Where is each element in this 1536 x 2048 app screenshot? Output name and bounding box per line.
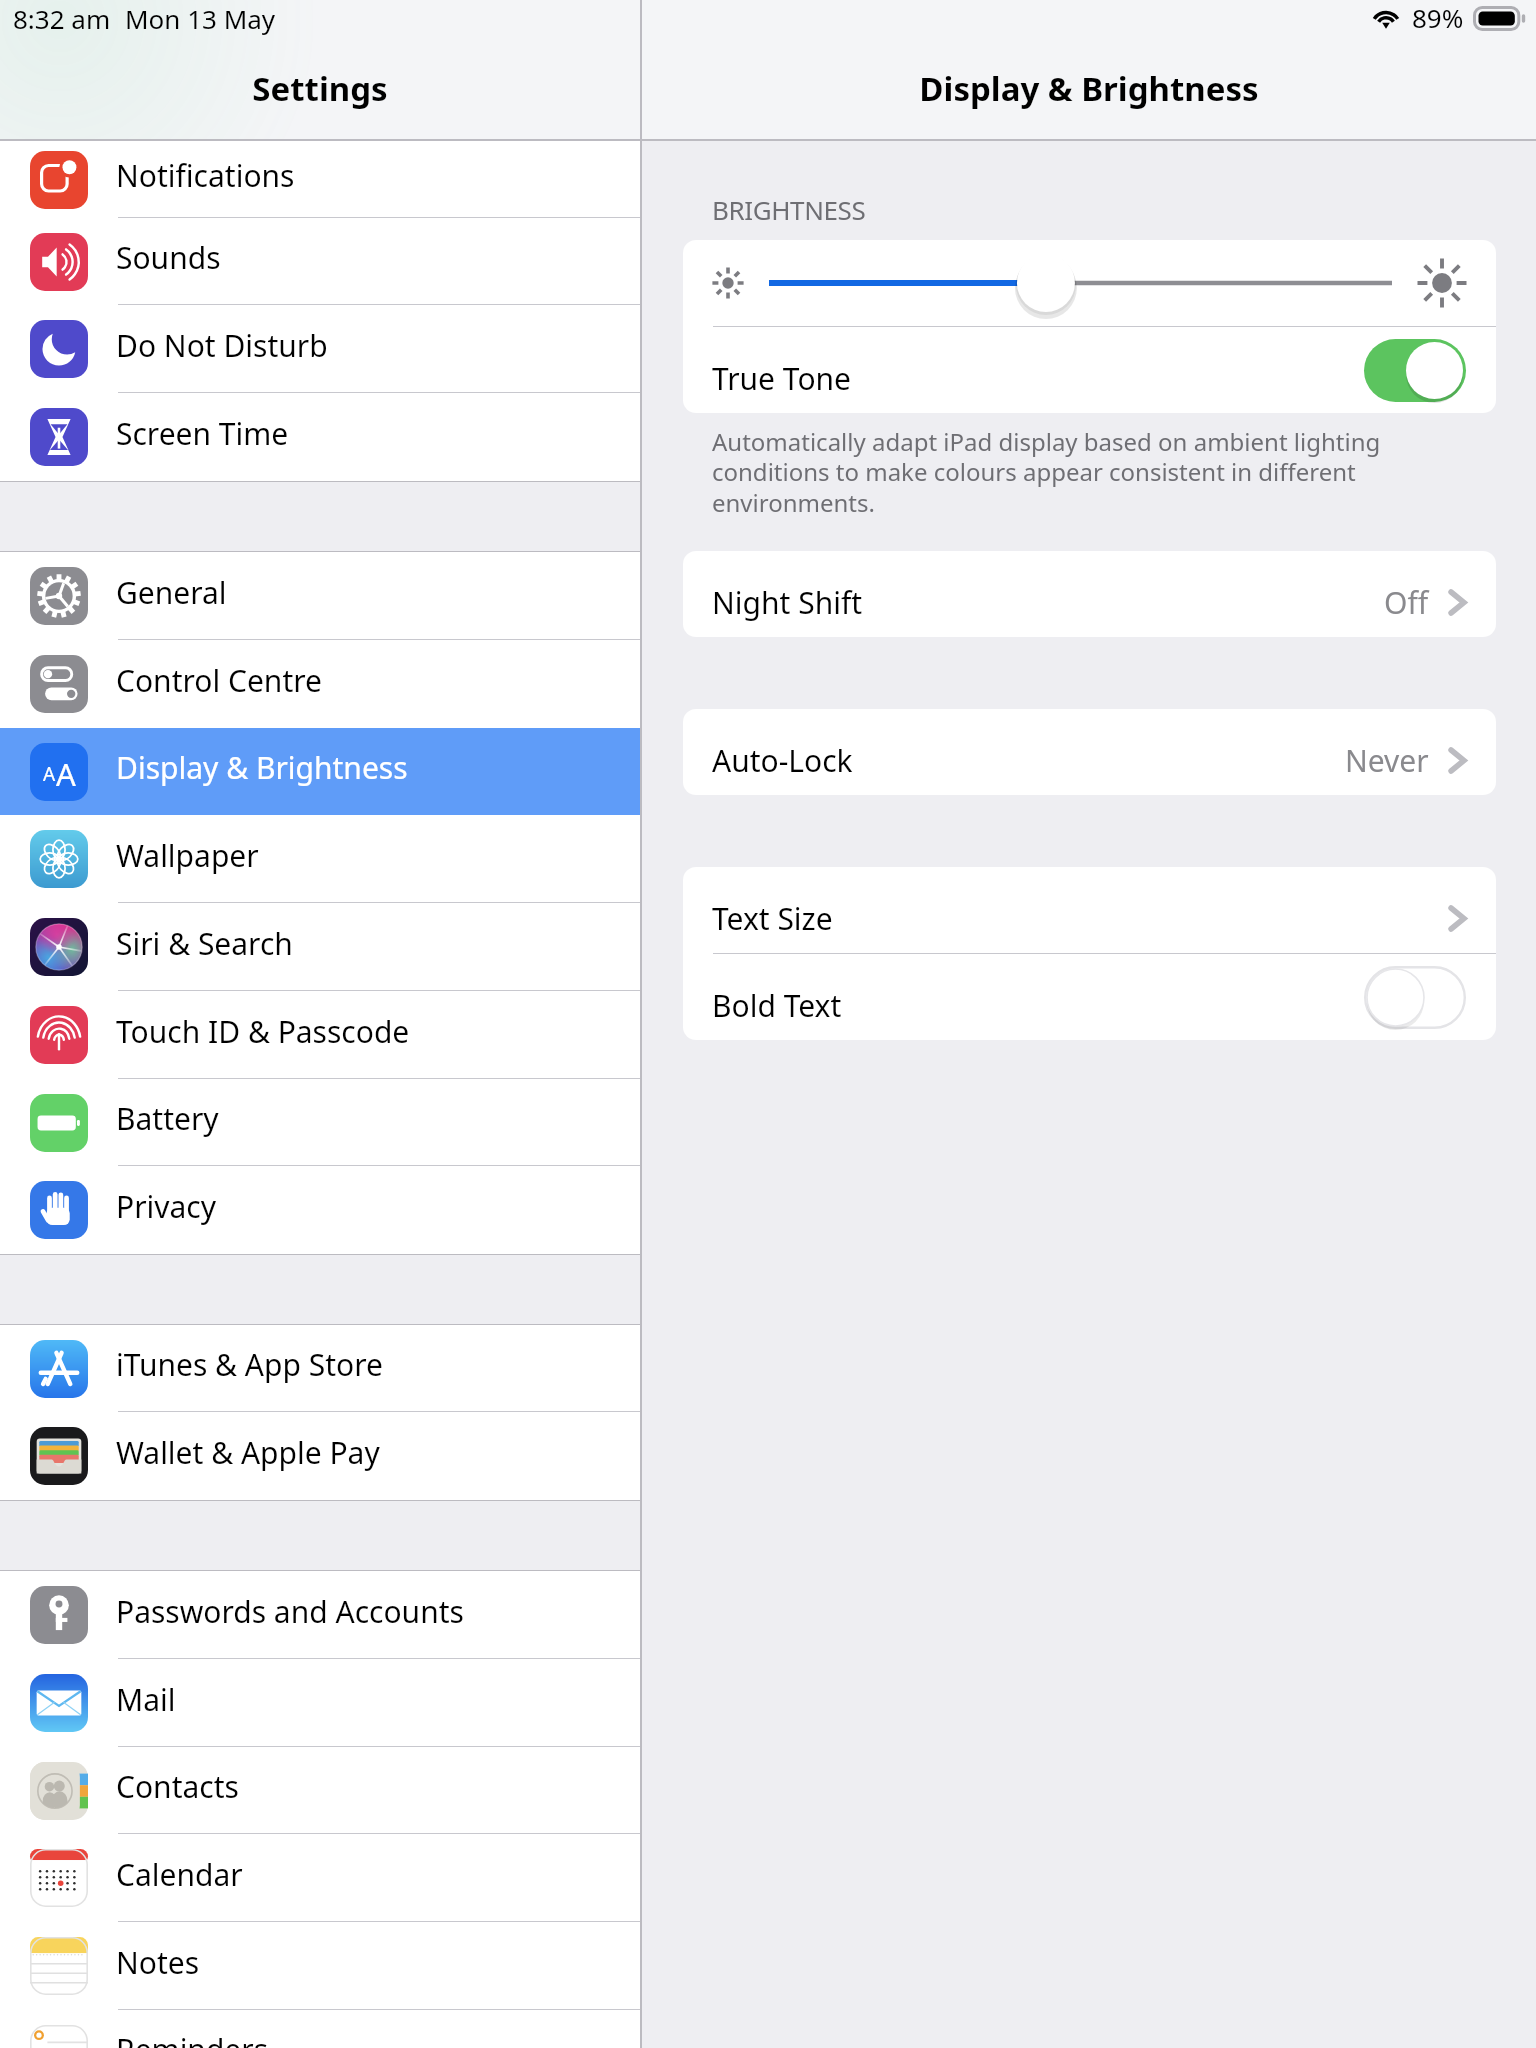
button[interactable]: Contacts <box>0 1747 640 1834</box>
staticText: Wallet & Apple Pay <box>116 1432 380 1473</box>
button[interactable]: Off <box>1364 966 1466 1029</box>
staticText: Touch ID & Passcode <box>116 1011 410 1052</box>
staticText: 8:32 am <box>13 1 111 36</box>
button[interactable]: Wallpaper <box>0 815 640 903</box>
staticText: Mon 13 May <box>125 1 276 36</box>
staticText: 89% <box>1412 0 1464 35</box>
button[interactable]: True Tone <box>683 327 1496 413</box>
button[interactable]: Sounds <box>0 218 640 305</box>
staticText: Contacts <box>116 1766 239 1807</box>
button[interactable]: Screen brightness <box>683 240 1496 326</box>
staticText: Notes <box>116 1942 200 1983</box>
button[interactable]: Wallet & Apple Pay <box>0 1412 640 1500</box>
staticText: A <box>43 761 56 787</box>
staticText: Automatically adapt iPad display based o… <box>712 425 1381 519</box>
staticText: BRIGHTNESS <box>712 192 866 227</box>
button[interactable]: Control Centre <box>0 640 640 728</box>
button[interactable]: Notifications <box>0 141 640 218</box>
button[interactable]: Touch ID & Passcode <box>0 991 640 1079</box>
staticText: Sounds <box>116 237 221 278</box>
staticText: Control Centre <box>116 660 322 701</box>
staticText: Display & Brightness <box>642 66 1536 111</box>
staticText: Calendar <box>116 1854 243 1895</box>
button[interactable]: Siri & Search <box>0 903 640 991</box>
staticText: Night Shift <box>712 582 863 623</box>
button[interactable]: Calendar <box>0 1834 640 1922</box>
staticText: Notifications <box>116 155 295 196</box>
staticText: General <box>116 572 227 613</box>
button[interactable]: Privacy <box>0 1166 640 1254</box>
staticText: Privacy <box>116 1186 217 1227</box>
staticText: Never <box>1345 740 1429 781</box>
button[interactable]: Text Size <box>683 867 1496 953</box>
staticText: Battery <box>116 1098 219 1139</box>
other: On <box>1364 339 1466 402</box>
staticText: Bold Text <box>712 985 842 1026</box>
staticText: iTunes & App Store <box>116 1344 383 1385</box>
button[interactable]: iTunes & App Store <box>0 1325 640 1412</box>
staticText: Siri & Search <box>116 923 293 964</box>
button[interactable]: Battery <box>0 1079 640 1166</box>
button[interactable]: On <box>1364 339 1466 402</box>
button[interactable]: Reminders <box>0 2010 640 2048</box>
staticText: Screen Time <box>116 413 289 454</box>
button[interactable]: A <box>0 728 640 815</box>
other: Off <box>1364 966 1466 1029</box>
button[interactable]: Night Shift <box>683 551 1496 637</box>
staticText: True Tone <box>712 358 852 399</box>
staticText: Reminders <box>116 2029 269 2048</box>
staticText: Mail <box>116 1679 176 1720</box>
staticText: Display & Brightness <box>116 747 408 788</box>
staticText: A <box>56 753 76 795</box>
button[interactable]: Screen Time <box>0 393 640 481</box>
staticText: Passwords and Accounts <box>116 1591 464 1632</box>
button[interactable]: Mail <box>0 1659 640 1747</box>
button[interactable]: Bold Text <box>683 954 1496 1040</box>
button[interactable]: Auto-Lock <box>683 709 1496 795</box>
button[interactable]: Passwords and Accounts <box>0 1571 640 1659</box>
staticText: Settings <box>0 66 640 111</box>
staticText: Text Size <box>712 898 833 939</box>
staticText: Auto-Lock <box>712 740 853 781</box>
button[interactable]: General <box>0 552 640 640</box>
button[interactable]: Do Not Disturb <box>0 305 640 393</box>
button[interactable]: Notes <box>0 1922 640 2010</box>
staticText: Do Not Disturb <box>116 325 328 366</box>
staticText: Off <box>1384 582 1429 623</box>
staticText: Wallpaper <box>116 835 259 876</box>
